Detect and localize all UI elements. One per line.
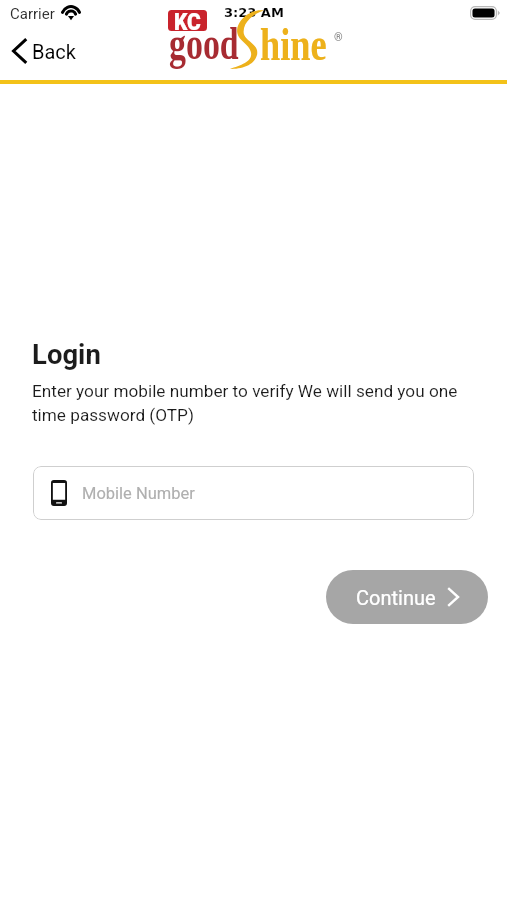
staticText: Carrier	[10, 5, 55, 23]
staticText: good	[169, 18, 239, 69]
staticText: ®	[334, 31, 343, 44]
staticText: Continue	[356, 586, 436, 609]
button[interactable]: Mobile Number	[33, 466, 474, 520]
staticText: Enter your mobile number to verify We wi…	[32, 381, 474, 426]
staticText: Mobile Number	[82, 484, 195, 503]
staticText: Login	[32, 338, 101, 370]
staticText: Back	[32, 40, 76, 63]
staticText: 3:23 AM	[224, 5, 284, 20]
staticText: KC	[174, 10, 201, 31]
staticText: hine	[260, 19, 327, 70]
button[interactable]: Continue	[326, 570, 488, 624]
button[interactable]: Back	[8, 36, 80, 66]
